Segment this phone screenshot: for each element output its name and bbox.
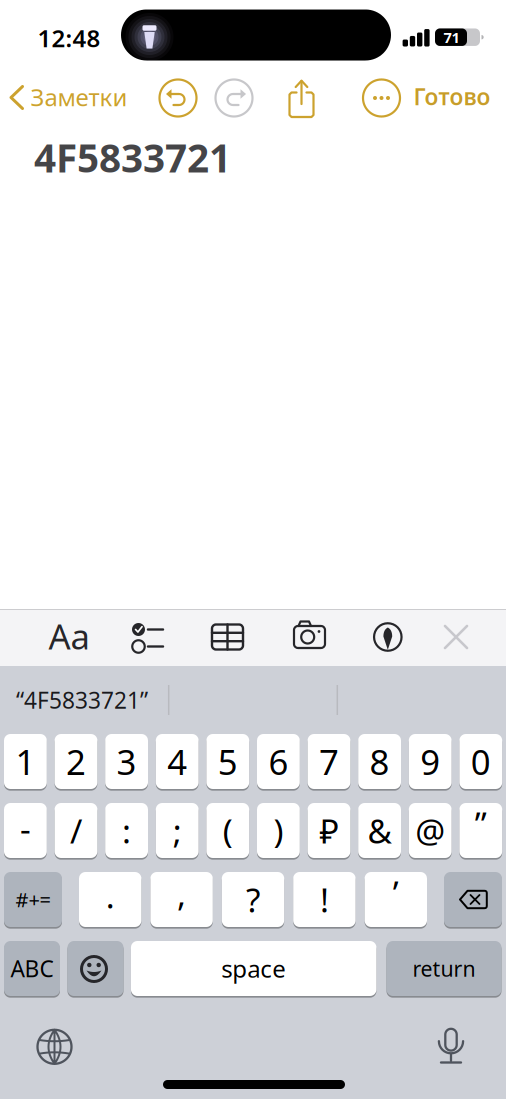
staticText: ’ bbox=[393, 870, 399, 915]
staticText: . bbox=[106, 873, 115, 918]
staticText: “4F5833721” bbox=[16, 685, 148, 715]
staticText: 3 bbox=[117, 738, 137, 784]
staticText: 71 bbox=[443, 28, 459, 47]
staticText: 8 bbox=[370, 738, 390, 784]
staticText: 1 bbox=[15, 738, 35, 784]
staticText: : bbox=[122, 808, 131, 853]
staticText: ₽ bbox=[319, 808, 338, 853]
staticText: Заметки bbox=[30, 81, 127, 113]
staticText: 0 bbox=[471, 738, 491, 784]
staticText: @ bbox=[415, 808, 445, 853]
staticText: 7 bbox=[319, 738, 339, 784]
staticText: return bbox=[412, 954, 475, 983]
staticText: Готово bbox=[413, 81, 490, 111]
staticText: 5 bbox=[218, 738, 238, 784]
staticText: - bbox=[20, 806, 31, 851]
staticText: #+= bbox=[15, 886, 50, 913]
staticText: 6 bbox=[268, 738, 288, 784]
staticText: 12:48 bbox=[37, 22, 100, 54]
staticText: ) bbox=[273, 808, 283, 853]
staticText: 2 bbox=[66, 738, 86, 784]
staticText: ” bbox=[475, 801, 487, 846]
staticText: ABC bbox=[10, 953, 53, 983]
staticText: & bbox=[368, 808, 392, 853]
staticText: ( bbox=[223, 808, 233, 853]
staticText: ? bbox=[246, 877, 260, 922]
staticText: 4F5833721 bbox=[34, 132, 231, 183]
staticText: ; bbox=[173, 808, 182, 853]
staticText: space bbox=[221, 953, 286, 984]
staticText: 4 bbox=[167, 738, 187, 784]
staticText: Aa bbox=[48, 613, 89, 659]
staticText: / bbox=[70, 808, 82, 853]
staticText: ! bbox=[320, 877, 329, 922]
staticText: 9 bbox=[420, 738, 440, 784]
staticText: , bbox=[177, 871, 186, 916]
